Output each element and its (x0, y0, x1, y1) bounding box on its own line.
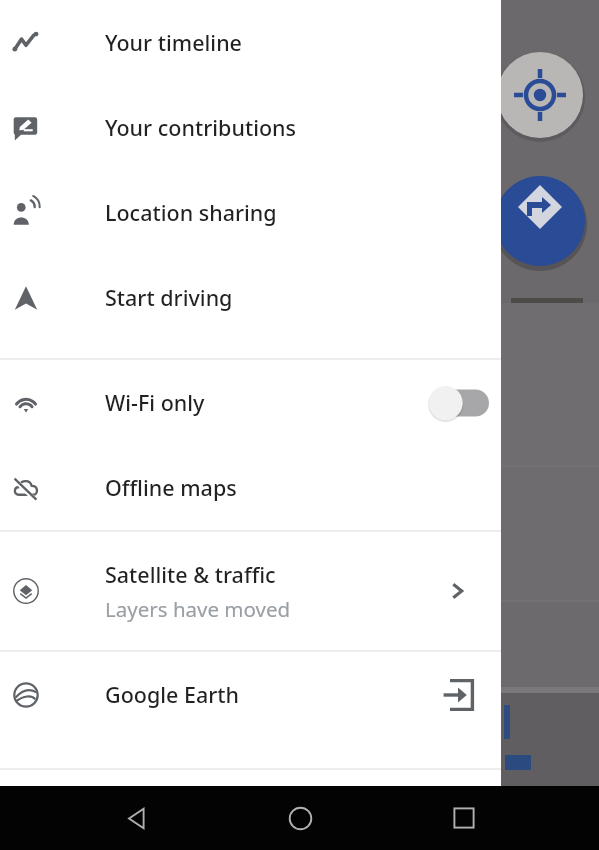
button[interactable]: Your timeline (0, 0, 501, 85)
button[interactable]: Open Satellite & traffic (437, 570, 479, 612)
button[interactable]: Your contributions (0, 85, 501, 170)
button[interactable]: Location sharing (0, 170, 501, 255)
staticText: Google Earth (105, 680, 240, 709)
staticText: Start driving (105, 283, 233, 312)
button[interactable]: Google Earth (0, 652, 501, 737)
staticText: Wi-Fi only (105, 388, 205, 417)
button[interactable]: Home (271, 789, 329, 847)
button[interactable]: Open Google Earth app (438, 675, 478, 715)
staticText: Layers have moved (105, 595, 291, 623)
button[interactable]: Start driving (0, 255, 501, 340)
button[interactable]: Satellite & traffic (0, 532, 501, 650)
staticText: Your contributions (105, 113, 297, 142)
staticText: Location sharing (105, 198, 277, 227)
button[interactable]: Recent apps (435, 789, 493, 847)
staticText: Satellite & traffic (105, 560, 276, 589)
staticText: Offline maps (105, 473, 237, 502)
button[interactable]: Offline maps (0, 445, 501, 530)
button[interactable]: Wi-Fi only (0, 360, 501, 445)
button[interactable]: Back (106, 789, 164, 847)
button[interactable]: Wi-Fi only toggle, off (427, 386, 489, 420)
staticText: Your timeline (105, 28, 242, 57)
